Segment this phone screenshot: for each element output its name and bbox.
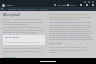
button[interactable]: App logo [2, 4, 5, 7]
staticText: LIBRARY [6, 4, 14, 7]
staticText: Search [70, 4, 76, 7]
staticText: 5 The Bible teaches that Jehovah God cre… [49, 21, 93, 40]
staticText: Jesus' followers called him “Rabbi,” whi… [3, 26, 45, 33]
staticText: What does the Bible really teach about t… [3, 47, 45, 54]
staticText: JESUS CHRIST [49, 42, 63, 45]
staticText: The Bible—What Is Its Message? Chapter 4 [8, 8, 48, 11]
staticText: The Bible was written over a period of 1… [5, 41, 43, 45]
button[interactable]: Did you know? [3, 35, 45, 45]
staticText: NWT Study [57, 4, 67, 7]
staticText: Did you know? [5, 36, 20, 39]
staticText: LEARN MORE [3, 56, 16, 58]
staticText: Jesus is the Son of God, the firstborn o… [49, 46, 93, 53]
staticText: Who is Jesus? [3, 13, 21, 17]
staticText: 4 “This means everlasting life, their co… [49, 13, 93, 20]
staticText: Jesus Christ is the Son of God and was s… [3, 18, 45, 25]
